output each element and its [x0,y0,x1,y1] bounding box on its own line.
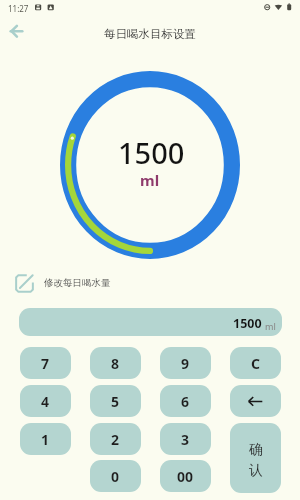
button[interactable]: 00 [160,460,211,492]
staticText: 6 [181,392,190,411]
staticText: 1500 [233,315,262,332]
staticText: 4 [41,392,50,411]
button[interactable]: 6 [160,385,211,417]
staticText: 每日喝水目标设置 [104,27,196,41]
staticText: 8 [111,354,120,373]
button[interactable]: 修改每日喝水量 [0,274,300,292]
staticText: 5 [111,392,120,411]
staticText: ml [140,170,160,190]
staticText: 认 [249,462,263,480]
staticText: 确 [249,441,263,459]
staticText: ml [265,320,276,332]
staticText: 2 [111,430,120,449]
button[interactable]: 1 [20,423,71,455]
button[interactable]: 1500 [19,308,282,336]
staticText: 修改每日喝水量 [44,277,111,289]
button[interactable]: Back [2,18,30,46]
button[interactable]: 9 [160,347,211,379]
button[interactable]: C [230,347,281,379]
button[interactable]: 确 [230,423,281,493]
button[interactable]: 0 [90,460,141,492]
staticText: 1 [41,430,50,449]
staticText: 3 [181,430,190,449]
staticText: 0 [111,467,120,486]
staticText: 1500 [118,133,185,172]
button[interactable]: 7 [20,347,71,379]
button[interactable]: 2 [90,423,141,455]
staticText: 11:27 [8,3,29,14]
button[interactable]: 5 [90,385,141,417]
button[interactable]: Backspace [230,385,281,417]
staticText: 9 [181,354,190,373]
staticText: 7 [41,354,50,373]
staticText: 00 [177,467,194,486]
button[interactable]: 3 [160,423,211,455]
button[interactable]: 8 [90,347,141,379]
staticText: C [251,354,260,373]
button[interactable]: 4 [20,385,71,417]
